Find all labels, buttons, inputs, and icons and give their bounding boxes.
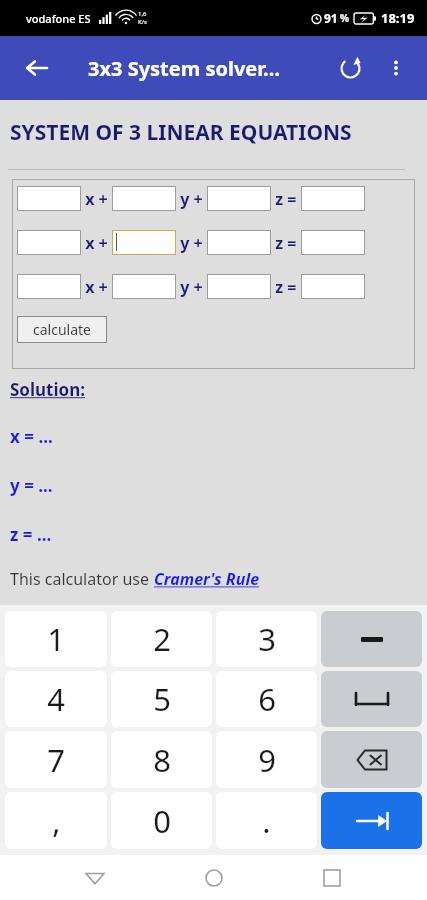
staticText: 2 <box>153 618 171 660</box>
staticText: , <box>52 800 61 842</box>
button[interactable]: 5 <box>111 671 212 727</box>
button[interactable] <box>301 186 365 211</box>
button[interactable] <box>112 230 176 255</box>
button[interactable]: Next <box>321 792 422 849</box>
staticText: x = ... <box>10 425 53 448</box>
staticText: 8 <box>153 739 171 781</box>
button[interactable]: Space <box>321 671 422 727</box>
button[interactable]: , <box>5 792 107 849</box>
staticText: 6 <box>258 678 276 720</box>
staticText: . <box>262 800 271 842</box>
staticText: z = ... <box>10 523 52 546</box>
button[interactable] <box>112 186 176 211</box>
button[interactable]: calculate <box>17 316 107 343</box>
staticText: z = <box>271 276 301 298</box>
button[interactable]: Recent apps <box>308 855 356 900</box>
staticText: 18:19 <box>381 9 415 27</box>
button[interactable]: 2 <box>111 611 212 667</box>
button[interactable] <box>112 274 176 299</box>
button[interactable]: Back <box>14 46 58 90</box>
button[interactable]: Minus <box>321 611 422 667</box>
button[interactable] <box>17 230 81 255</box>
staticText: vodafone ES <box>26 11 91 26</box>
staticText: SYSTEM OF 3 LINEAR EQUATIONS <box>10 118 352 147</box>
button[interactable]: Refresh <box>327 45 373 91</box>
staticText: y + <box>176 276 207 298</box>
staticText: 91 <box>324 10 338 26</box>
staticText: y + <box>176 188 207 210</box>
staticText: 1 <box>47 618 65 660</box>
staticText: x + <box>81 188 112 210</box>
staticText: 0 <box>153 800 171 842</box>
button[interactable]: 6 <box>216 671 317 727</box>
staticText: This calculator use <box>10 568 154 590</box>
button[interactable] <box>207 274 271 299</box>
staticText: 3 <box>258 618 276 660</box>
staticText: 1,6 <box>138 10 147 18</box>
button[interactable]: 7 <box>5 731 107 788</box>
button[interactable]: 4 <box>5 671 107 727</box>
button[interactable]: 9 <box>216 731 317 788</box>
button[interactable]: Solution: <box>10 378 86 401</box>
button[interactable]: Cramer's Rule <box>154 568 260 590</box>
staticText: 9 <box>258 739 276 781</box>
button[interactable] <box>301 230 365 255</box>
staticText: y + <box>176 232 207 254</box>
staticText: z = <box>271 188 301 210</box>
staticText: x + <box>81 276 112 298</box>
staticText: 5 <box>153 678 171 720</box>
staticText: 3x3 System solver… <box>88 55 281 82</box>
button[interactable]: 0 <box>111 792 212 849</box>
button[interactable] <box>207 186 271 211</box>
button[interactable]: Home <box>190 855 238 900</box>
staticText: % <box>340 11 350 25</box>
button[interactable]: More options <box>373 45 419 91</box>
staticText: x + <box>81 232 112 254</box>
staticText: 4 <box>47 678 65 720</box>
button[interactable] <box>207 230 271 255</box>
button[interactable] <box>17 186 81 211</box>
button[interactable]: 1 <box>5 611 107 667</box>
button[interactable] <box>17 274 81 299</box>
button[interactable]: 3 <box>216 611 317 667</box>
staticText: z = <box>271 232 301 254</box>
button[interactable] <box>301 274 365 299</box>
staticText: calculate <box>33 320 91 339</box>
button[interactable]: . <box>216 792 317 849</box>
staticText: K/s <box>138 18 147 26</box>
button[interactable]: Delete <box>321 731 422 788</box>
button[interactable]: Back <box>71 855 119 900</box>
button[interactable]: 8 <box>111 731 212 788</box>
staticText: 7 <box>47 739 65 781</box>
staticText: y = ... <box>10 474 53 497</box>
